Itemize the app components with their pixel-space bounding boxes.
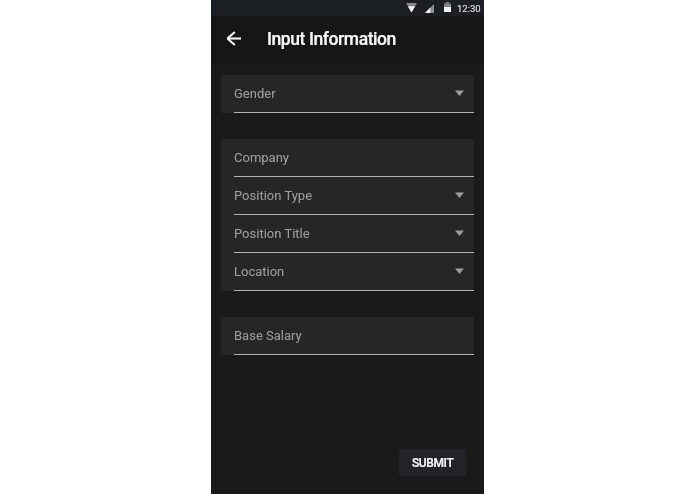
- staticText: Position Type: [234, 188, 313, 203]
- staticText: Gender: [234, 86, 276, 101]
- staticText: Company: [234, 150, 289, 165]
- button[interactable]: Company: [221, 139, 474, 177]
- staticText: SUBMIT: [412, 456, 454, 470]
- button[interactable]: Back: [219, 23, 249, 53]
- staticText: Input Information: [267, 29, 396, 50]
- staticText: 12:30: [457, 3, 481, 14]
- staticText: Base Salary: [234, 328, 302, 343]
- button[interactable]: Base Salary: [221, 317, 474, 355]
- button[interactable]: Location: [221, 253, 474, 291]
- button[interactable]: Position Type: [221, 177, 474, 215]
- button[interactable]: Gender: [221, 75, 474, 113]
- staticText: Position Title: [234, 226, 310, 241]
- staticText: Location: [234, 264, 285, 279]
- button[interactable]: Position Title: [221, 215, 474, 253]
- button[interactable]: SUBMIT: [399, 449, 466, 476]
